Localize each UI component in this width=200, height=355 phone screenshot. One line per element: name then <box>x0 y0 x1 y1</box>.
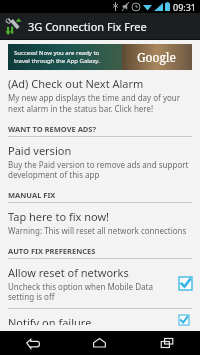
staticText: Tap here to fix now! <box>8 209 110 224</box>
button[interactable]: Home <box>66 331 133 355</box>
staticText: Success! Now you are ready to <box>14 49 100 57</box>
button[interactable]: Paid version <box>0 137 200 186</box>
staticText: My new app displays the time and day of … <box>8 92 181 103</box>
staticText: 3G Connection Fix Free <box>28 19 147 34</box>
staticText: MANUAL FIX <box>8 190 56 200</box>
button[interactable]: Allow reset of networks <box>0 259 200 308</box>
staticText: Warning: This will reset all network con… <box>8 225 187 236</box>
other: App icon <box>5 18 22 35</box>
staticText: Notify on failure <box>8 315 92 325</box>
button[interactable]: Recent apps <box>133 331 200 355</box>
staticText: 09:31 <box>173 1 197 13</box>
button[interactable]: (Ad) Check out Next Alarm <box>0 74 200 120</box>
staticText: AUTO FIX PREFERENCES <box>8 246 96 256</box>
staticText: Buy the Paid version to remove ads and s… <box>8 159 192 180</box>
staticText: Allow reset of networks <box>8 265 129 280</box>
staticText: Google <box>137 49 177 65</box>
staticText: Paid version <box>8 143 72 158</box>
staticText: Uncheck this option when Mobile Data set… <box>8 281 173 302</box>
button[interactable]: Checkbox, checked <box>179 277 192 290</box>
button[interactable]: Checkbox, checked <box>179 315 192 325</box>
staticText: (Ad) Check out Next Alarm <box>8 76 144 91</box>
button[interactable]: Back <box>0 331 66 355</box>
button[interactable]: Tap here to fix now! <box>0 203 200 242</box>
staticText: WANT TO REMOVE ADS? <box>8 124 97 134</box>
staticText: travel through the App Galaxy. <box>14 57 100 65</box>
button[interactable]: Notify on failure <box>0 309 200 331</box>
button[interactable]: Advertisement banner <box>8 44 192 70</box>
staticText: next alarm in the status bar. Click here… <box>8 103 154 114</box>
